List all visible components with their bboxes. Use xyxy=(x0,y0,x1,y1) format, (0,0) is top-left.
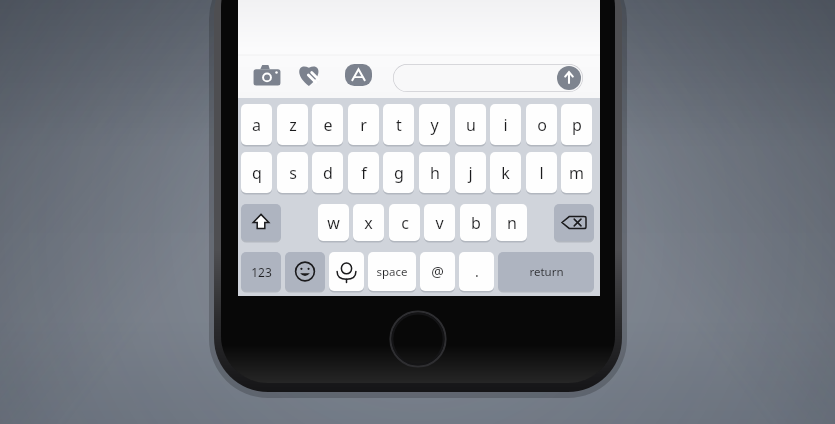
staticText: j xyxy=(468,162,473,184)
staticText: . xyxy=(475,262,479,281)
staticText: f xyxy=(361,162,367,184)
staticText: z xyxy=(289,114,297,136)
button[interactable]: d xyxy=(312,152,343,193)
staticText: y xyxy=(430,114,439,136)
staticText: b xyxy=(471,212,481,234)
button[interactable]: q xyxy=(241,152,272,193)
button[interactable]: b xyxy=(460,204,491,241)
staticText: x xyxy=(364,212,373,234)
button[interactable]: 123 xyxy=(241,252,281,291)
button[interactable]: a xyxy=(241,104,272,145)
staticText: o xyxy=(537,114,547,136)
button[interactable]: o xyxy=(526,104,557,145)
button[interactable]: w xyxy=(318,204,349,241)
button[interactable]: k xyxy=(490,152,521,193)
staticText: w xyxy=(327,212,340,234)
staticText: n xyxy=(507,212,517,234)
staticText: i xyxy=(503,114,508,136)
button[interactable]: z xyxy=(277,104,308,145)
staticText: q xyxy=(252,162,262,184)
staticText: p xyxy=(572,114,582,136)
staticText: m xyxy=(569,162,584,184)
staticText: 123 xyxy=(251,264,272,280)
staticText: return xyxy=(529,264,564,280)
staticText: @ xyxy=(431,262,444,281)
button[interactable]: h xyxy=(419,152,450,193)
button[interactable]: y xyxy=(419,104,450,145)
staticText: c xyxy=(401,212,409,234)
button[interactable]: r xyxy=(348,104,379,145)
button[interactable]: Shift xyxy=(241,204,281,241)
button[interactable]: m xyxy=(561,152,592,193)
button[interactable]: p xyxy=(561,104,592,145)
button[interactable]: Backspace xyxy=(554,204,594,241)
button[interactable]: space xyxy=(368,252,416,291)
button[interactable]: Emoji xyxy=(285,252,325,291)
button[interactable]: Dictation xyxy=(329,252,364,291)
button[interactable]: l xyxy=(526,152,557,193)
staticText: k xyxy=(501,162,510,184)
staticText: u xyxy=(466,114,476,136)
button[interactable]: Send xyxy=(557,66,581,90)
button[interactable]: @ xyxy=(420,252,455,291)
button[interactable]: e xyxy=(312,104,343,145)
button[interactable]: i xyxy=(490,104,521,145)
staticText: r xyxy=(360,114,367,136)
staticText: a xyxy=(252,114,261,136)
button[interactable]: f xyxy=(348,152,379,193)
button[interactable]: v xyxy=(424,204,455,241)
button[interactable]: t xyxy=(383,104,414,145)
staticText: space xyxy=(376,264,408,280)
button[interactable]: c xyxy=(389,204,420,241)
staticText: g xyxy=(394,162,404,184)
button[interactable]: s xyxy=(277,152,308,193)
staticText: l xyxy=(539,162,544,184)
button[interactable]: n xyxy=(496,204,527,241)
button[interactable]: Apps xyxy=(345,62,372,88)
button[interactable]: Camera xyxy=(253,63,281,87)
button[interactable]: j xyxy=(455,152,486,193)
button[interactable]: return xyxy=(498,252,594,291)
button[interactable]: g xyxy=(383,152,414,193)
staticText: d xyxy=(323,162,333,184)
staticText: h xyxy=(430,162,440,184)
button[interactable]: x xyxy=(353,204,384,241)
button[interactable]: Send xyxy=(393,64,583,92)
staticText: t xyxy=(396,114,402,136)
button[interactable]: Digital Touch xyxy=(296,62,324,88)
button[interactable]: u xyxy=(455,104,486,145)
button[interactable]: . xyxy=(459,252,494,291)
staticText: s xyxy=(289,162,297,184)
staticText: e xyxy=(323,114,333,136)
staticText: v xyxy=(435,212,444,234)
